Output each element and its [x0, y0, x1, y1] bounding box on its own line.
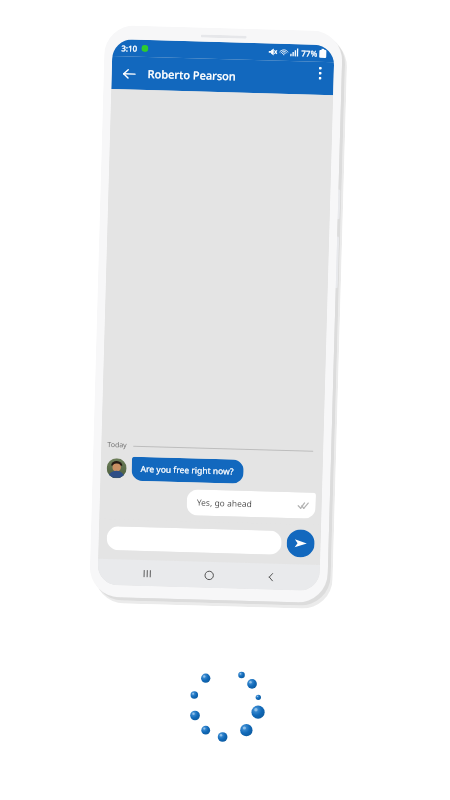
button[interactable]	[106, 526, 282, 555]
button[interactable]: Recents	[133, 560, 160, 586]
staticText: 3:10	[121, 42, 137, 54]
button[interactable]: Yes, go ahead	[186, 489, 316, 519]
staticText: 77%	[301, 47, 317, 59]
button[interactable]: Back	[257, 563, 284, 590]
staticText: Are you free right now?	[140, 463, 235, 478]
button[interactable]: Back	[115, 60, 142, 87]
staticText: Roberto Pearson	[147, 66, 237, 83]
button[interactable]: Home	[195, 561, 222, 588]
button[interactable]: Send	[286, 529, 315, 558]
staticText: Today	[107, 440, 127, 451]
staticText: Yes, go ahead	[197, 496, 253, 510]
button[interactable]: Are you free right now?	[131, 457, 244, 484]
button[interactable]: More options	[308, 61, 331, 84]
